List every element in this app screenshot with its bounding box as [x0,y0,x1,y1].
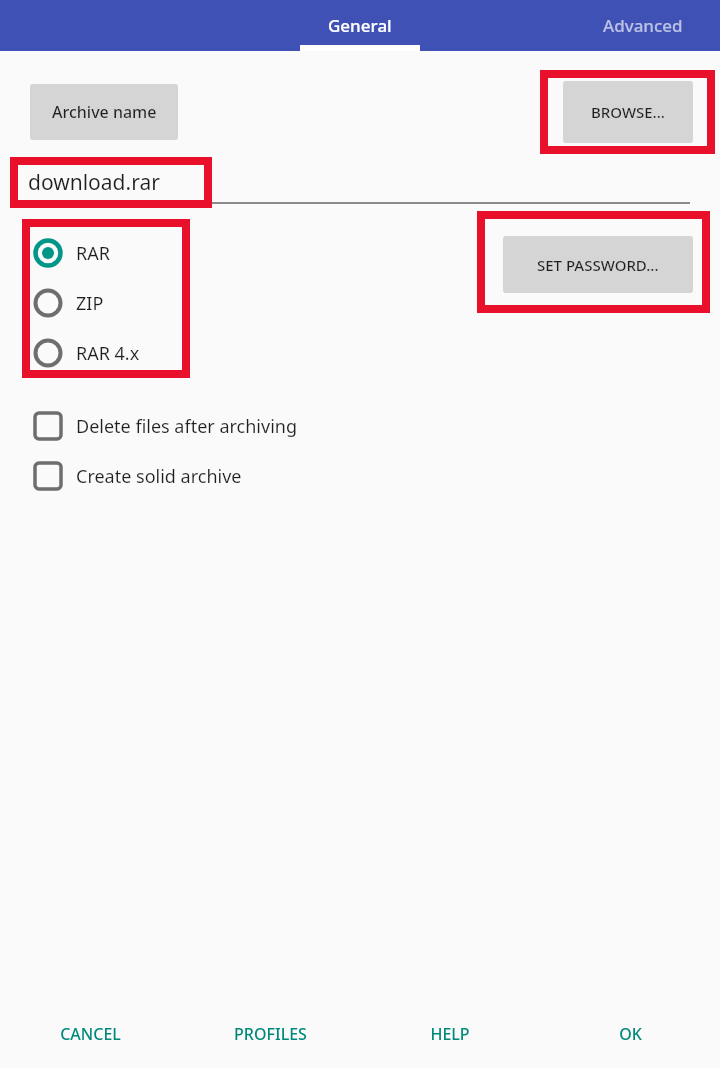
staticText: OK [619,1023,642,1045]
button[interactable]: Archive name [30,84,178,140]
staticText: PROFILES [234,1023,307,1045]
button[interactable]: OK [540,1000,720,1068]
staticText: Advanced [603,14,683,37]
staticText: Create solid archive [76,464,242,489]
staticText: CANCEL [60,1023,121,1045]
button[interactable]: RAR [32,231,182,275]
staticText: General [328,14,392,37]
button[interactable]: PROFILES [180,1000,360,1068]
staticText: HELP [430,1023,470,1045]
button[interactable]: General [300,0,420,51]
staticText: RAR [76,241,110,266]
staticText: Archive name [52,101,157,123]
staticText: ZIP [76,291,104,316]
button[interactable]: ZIP [32,281,182,325]
staticText: download.rar [28,168,160,197]
staticText: SET PASSWORD... [537,255,659,275]
button[interactable]: Create solid archive [31,454,361,498]
button[interactable]: Delete files after archiving [31,404,361,448]
button[interactable]: BROWSE... [563,81,693,143]
button[interactable]: SET PASSWORD... [503,236,693,293]
button[interactable]: RAR 4.x [32,331,182,375]
staticText: BROWSE... [591,102,665,122]
staticText: RAR 4.x [76,341,140,366]
button[interactable]: Advanced [566,0,720,51]
button[interactable]: CANCEL [0,1000,180,1068]
button[interactable]: HELP [360,1000,540,1068]
staticText: Delete files after archiving [76,414,297,439]
button[interactable]: download.rar [28,160,690,204]
